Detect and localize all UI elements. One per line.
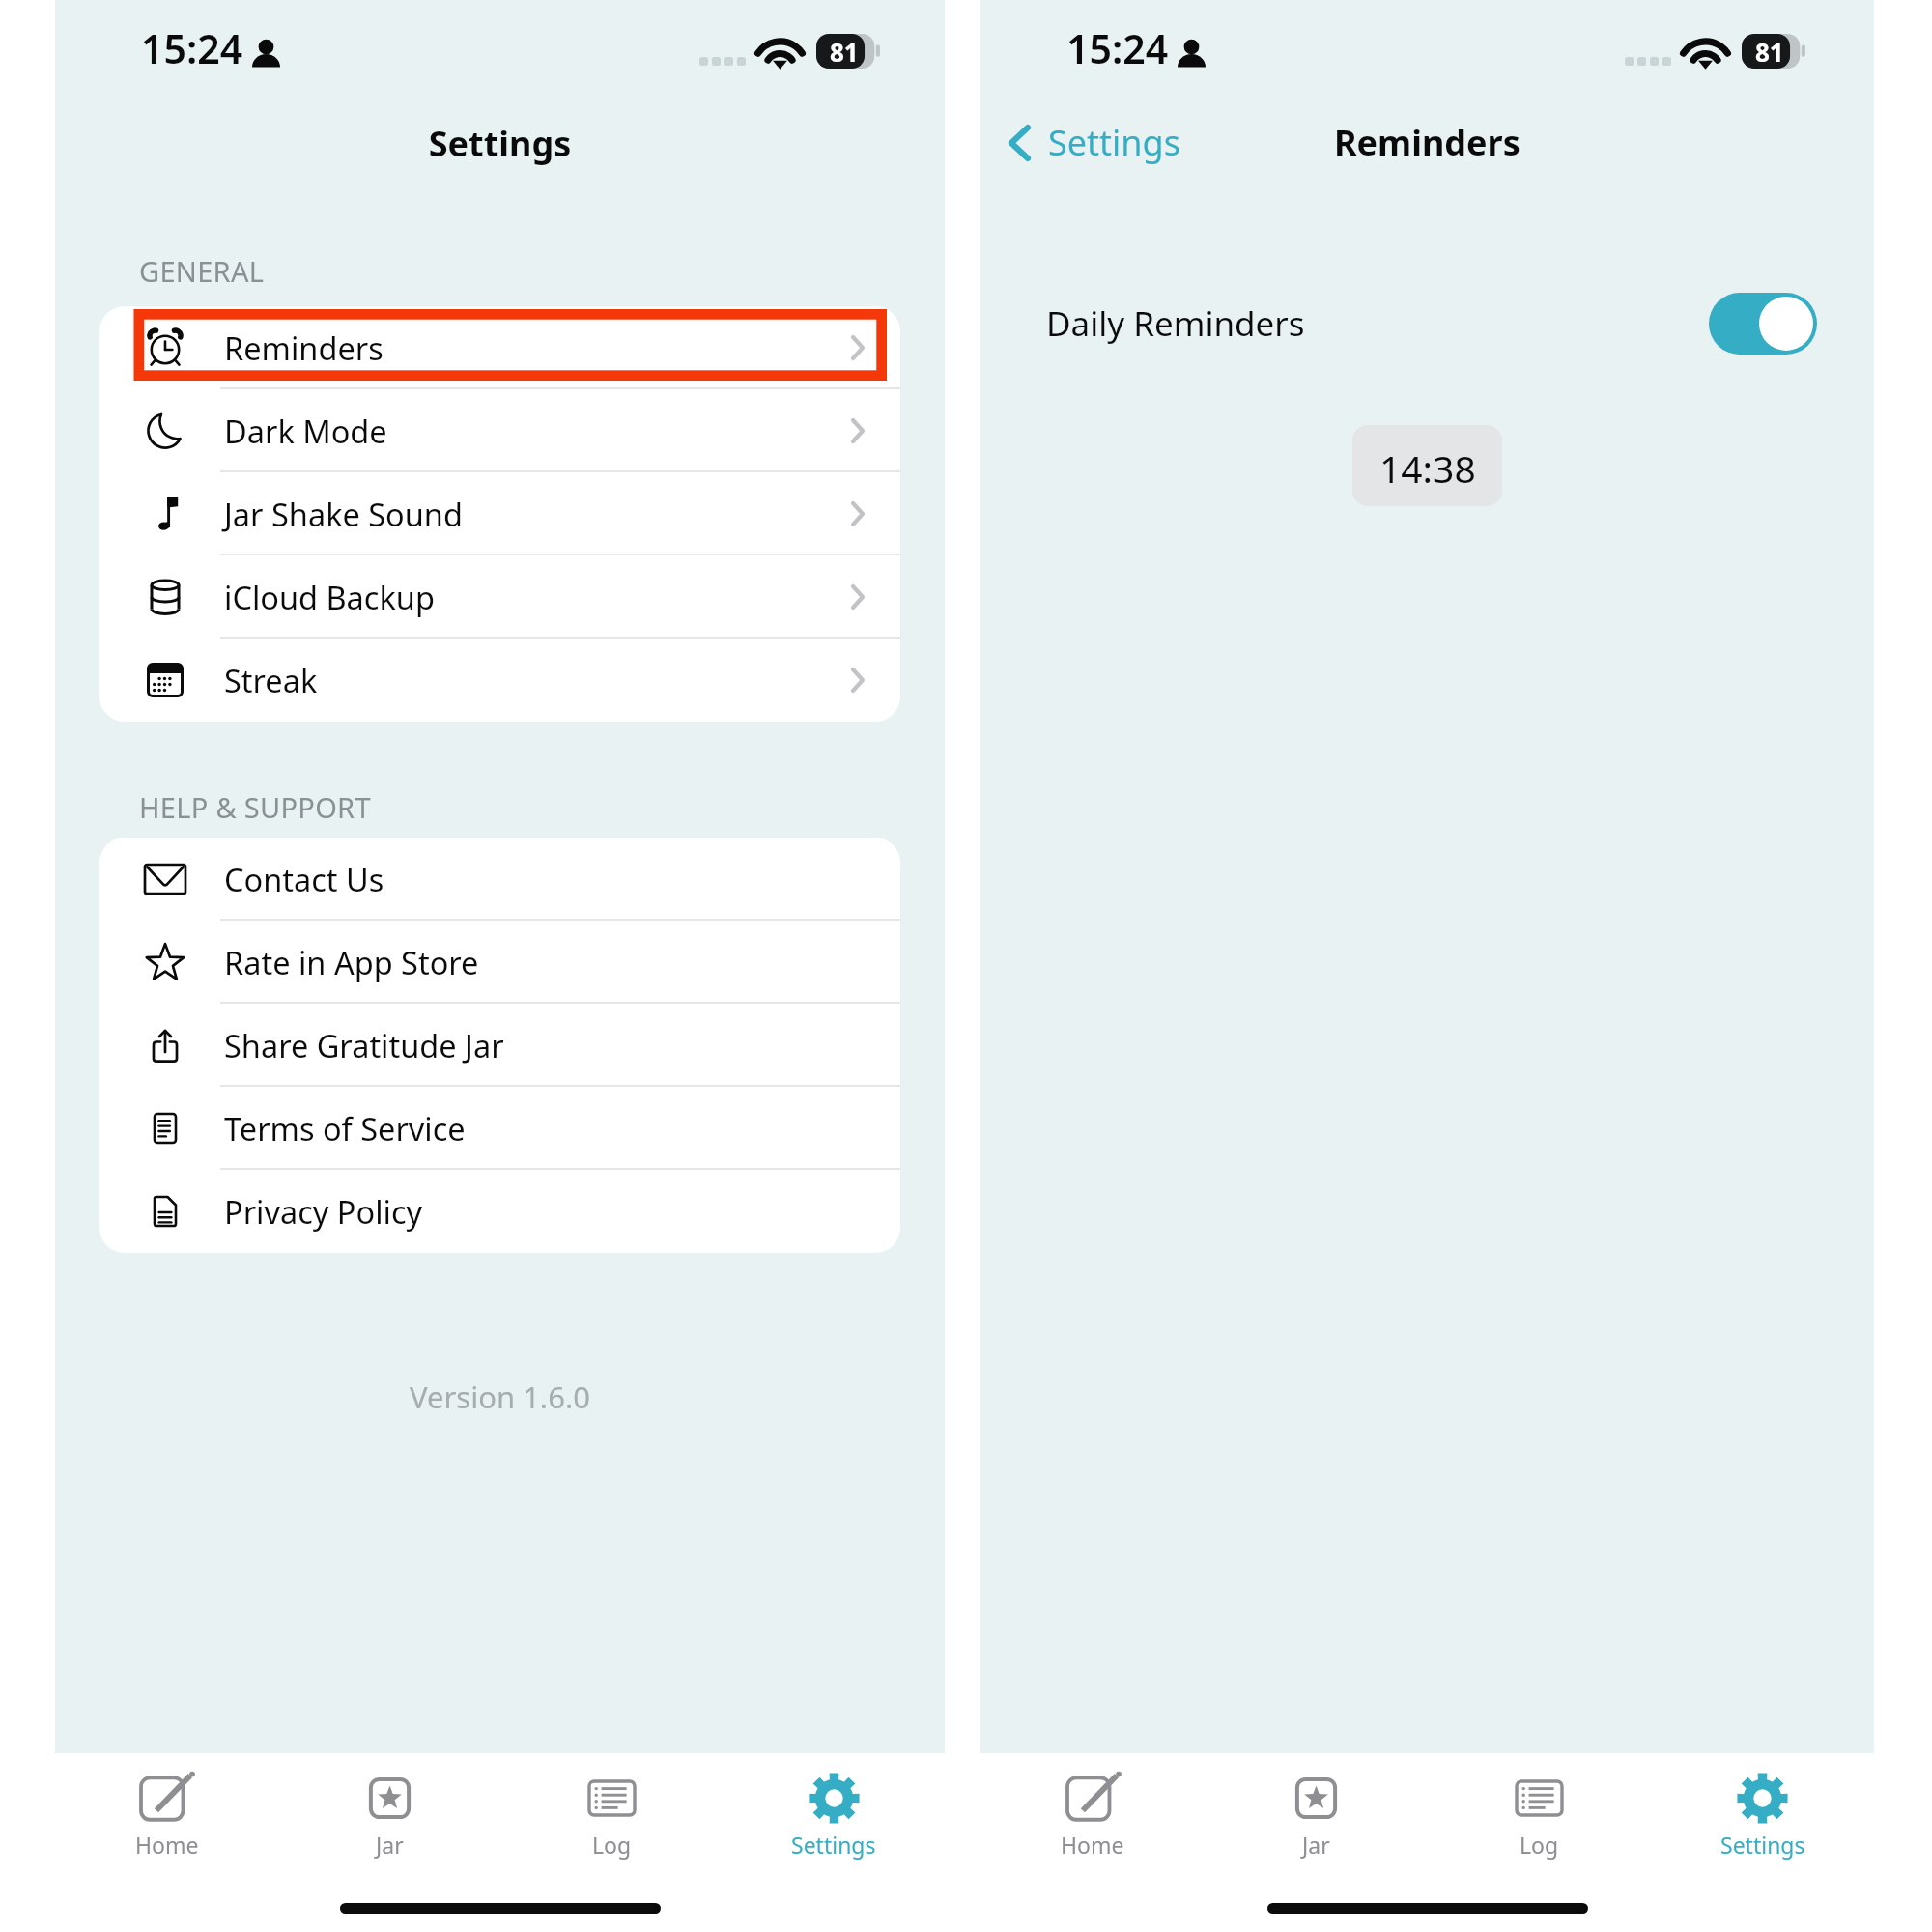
button[interactable]: Log bbox=[500, 1757, 723, 1861]
staticText: Log bbox=[592, 1830, 632, 1860]
button[interactable]: iCloud Backup bbox=[99, 555, 900, 639]
staticText: Version 1.6.0 bbox=[55, 1377, 945, 1417]
staticText: iCloud Backup bbox=[224, 576, 435, 618]
staticText: 81 bbox=[830, 35, 859, 69]
staticText: Log bbox=[1520, 1830, 1559, 1860]
staticText: Reminders bbox=[224, 327, 384, 369]
staticText: Jar Shake Sound bbox=[224, 493, 463, 535]
staticText: Settings bbox=[1048, 119, 1180, 166]
button[interactable]: Back bbox=[999, 113, 1190, 172]
button[interactable]: 14:38 bbox=[1352, 425, 1502, 506]
staticText: 81 bbox=[1755, 35, 1784, 69]
staticText: Rate in App Store bbox=[224, 941, 479, 983]
staticText: Privacy Policy bbox=[224, 1190, 423, 1233]
button[interactable]: Home bbox=[980, 1757, 1205, 1861]
staticText: Jar bbox=[376, 1830, 404, 1860]
button[interactable]: Dark Mode bbox=[99, 389, 900, 472]
staticText: Settings bbox=[1720, 1830, 1805, 1860]
button[interactable]: Home bbox=[55, 1757, 278, 1861]
staticText: Dark Mode bbox=[224, 410, 387, 452]
staticText: 15:24 bbox=[141, 21, 243, 75]
button[interactable]: Daily reminders toggle bbox=[1709, 293, 1817, 355]
button[interactable]: Terms of Service bbox=[99, 1087, 900, 1170]
staticText: Share Gratitude Jar bbox=[224, 1024, 504, 1066]
button[interactable]: Privacy Policy bbox=[99, 1170, 900, 1253]
staticText: Jar bbox=[1302, 1830, 1330, 1860]
other: Back bbox=[1009, 125, 1031, 161]
button[interactable]: Share Gratitude Jar bbox=[99, 1004, 900, 1087]
button[interactable]: Reminders bbox=[99, 306, 900, 389]
button[interactable]: Settings bbox=[723, 1757, 945, 1861]
button[interactable]: Jar Shake Sound bbox=[99, 472, 900, 555]
staticText: Home bbox=[1061, 1830, 1124, 1860]
button[interactable]: Jar bbox=[1205, 1757, 1428, 1861]
staticText: 15:24 bbox=[1066, 21, 1169, 75]
staticText: Daily Reminders bbox=[1046, 300, 1305, 347]
staticText: HELP & SUPPORT bbox=[139, 788, 371, 826]
button[interactable]: Streak bbox=[99, 639, 900, 722]
staticText: Terms of Service bbox=[224, 1107, 466, 1150]
button[interactable]: Settings bbox=[1651, 1757, 1874, 1861]
button[interactable]: Daily Reminders bbox=[980, 293, 1874, 355]
staticText: Settings bbox=[55, 120, 945, 167]
staticText: 14:38 bbox=[1379, 442, 1476, 494]
staticText: Streak bbox=[224, 659, 318, 701]
button[interactable]: Jar bbox=[278, 1757, 500, 1861]
staticText: Contact Us bbox=[224, 858, 384, 900]
staticText: Reminders bbox=[1334, 119, 1520, 166]
button[interactable]: Log bbox=[1428, 1757, 1651, 1861]
staticText: GENERAL bbox=[139, 252, 265, 290]
button[interactable]: Contact Us bbox=[99, 838, 900, 921]
staticText: Settings bbox=[791, 1830, 876, 1860]
staticText: Home bbox=[135, 1830, 199, 1860]
button[interactable]: Rate in App Store bbox=[99, 921, 900, 1004]
